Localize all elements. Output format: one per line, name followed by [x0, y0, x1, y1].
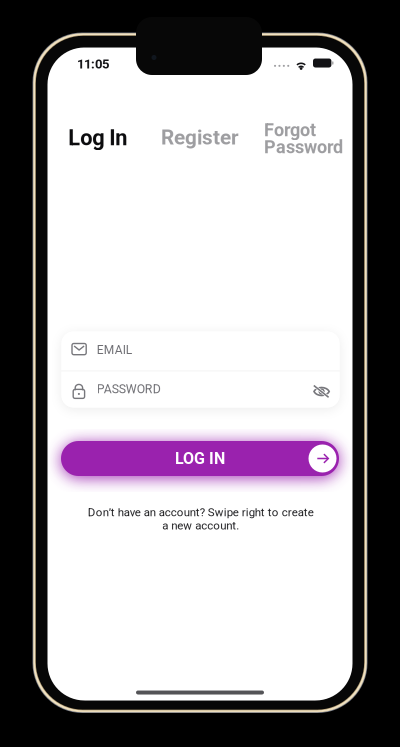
staticText: EMAIL: [97, 343, 132, 357]
staticText: LOG IN: [175, 449, 225, 468]
button[interactable]: LOG IN: [61, 441, 339, 476]
staticText: Password: [264, 136, 343, 158]
staticText: 11:05: [77, 56, 109, 72]
button[interactable]: PASSWORD: [61, 371, 339, 407]
button[interactable]: EMAIL: [61, 331, 339, 370]
staticText: Log In: [68, 125, 127, 150]
staticText: Register: [161, 125, 239, 149]
staticText: Forgot: [264, 119, 316, 141]
staticText: PASSWORD: [97, 382, 161, 396]
staticText: Don’t have an account? Swipe right to cr…: [87, 505, 313, 532]
